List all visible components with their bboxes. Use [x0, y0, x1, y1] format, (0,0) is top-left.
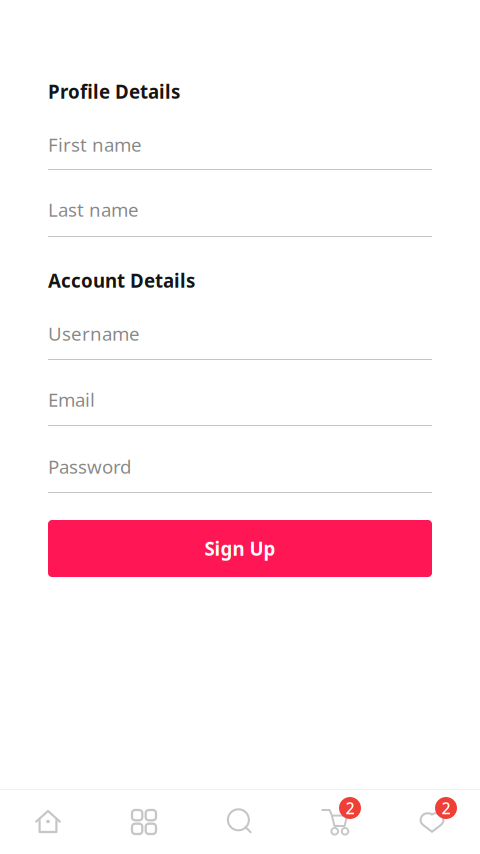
- staticText: Email: [48, 387, 95, 412]
- button[interactable]: Cart: [288, 790, 384, 854]
- staticText: Profile Details: [48, 79, 180, 104]
- button[interactable]: Last name: [48, 197, 432, 237]
- staticText: Sign Up: [204, 536, 275, 561]
- staticText: 2: [441, 797, 450, 819]
- button[interactable]: Email: [48, 387, 432, 426]
- staticText: Username: [48, 321, 140, 346]
- staticText: Password: [48, 454, 131, 479]
- button[interactable]: Categories: [96, 790, 192, 854]
- staticText: 2: [345, 797, 354, 819]
- button[interactable]: Username: [48, 321, 432, 360]
- button[interactable]: Favorites: [384, 790, 480, 854]
- button[interactable]: Search: [192, 790, 288, 854]
- button[interactable]: Password: [48, 454, 432, 493]
- staticText: First name: [48, 132, 142, 157]
- staticText: Account Details: [48, 268, 195, 293]
- staticText: Last name: [48, 197, 139, 222]
- button[interactable]: Sign Up: [48, 520, 432, 577]
- button[interactable]: Home: [0, 790, 96, 854]
- button[interactable]: First name: [48, 132, 432, 170]
